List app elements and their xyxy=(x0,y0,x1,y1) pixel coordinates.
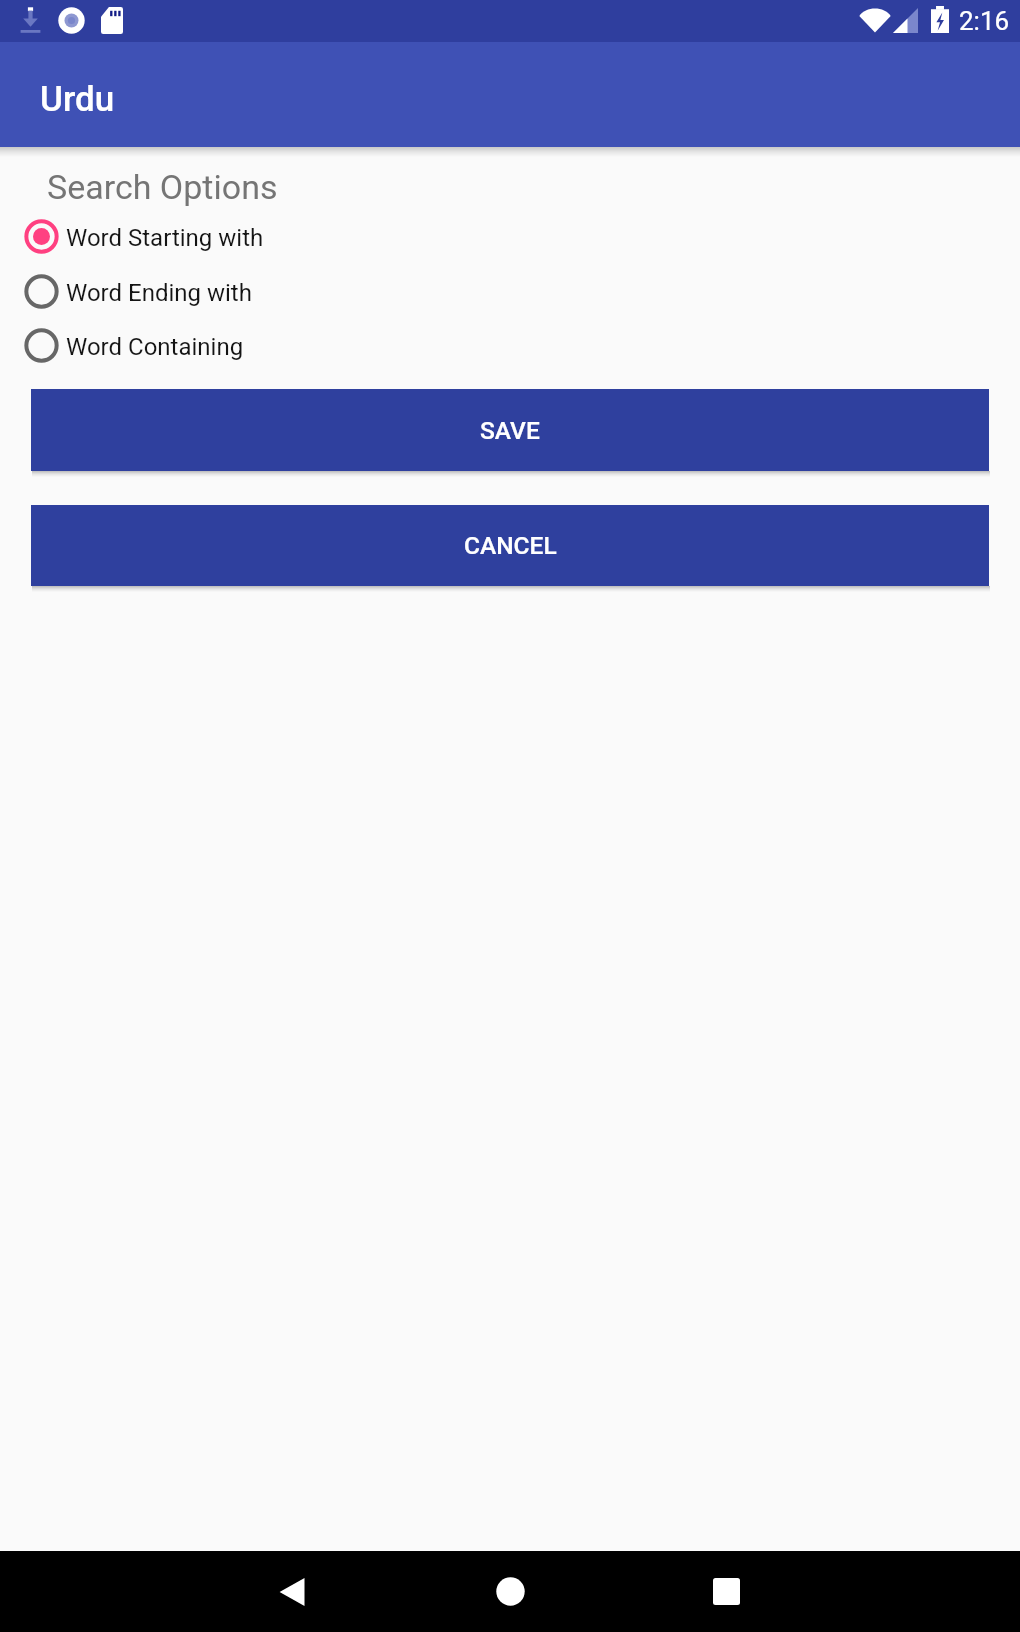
staticText: Word Starting with xyxy=(66,224,264,252)
button[interactable]: Recent apps xyxy=(682,1551,770,1632)
button[interactable]: Word Containing xyxy=(0,323,1020,367)
staticText: CANCEL xyxy=(464,531,557,560)
staticText: Search Options xyxy=(47,167,278,207)
button[interactable]: SAVE xyxy=(31,389,989,471)
button[interactable]: Word Starting with xyxy=(0,214,1020,258)
staticText: Word Containing xyxy=(66,333,244,361)
staticText: Word Ending with xyxy=(66,279,252,307)
staticText: SAVE xyxy=(480,416,540,445)
button[interactable]: Back xyxy=(250,1551,338,1632)
button[interactable]: CANCEL xyxy=(31,505,989,586)
button[interactable]: Home xyxy=(466,1551,554,1632)
button[interactable]: Word Ending with xyxy=(0,269,1020,313)
staticText: Urdu xyxy=(40,79,115,120)
staticText: 2:16 xyxy=(959,6,1010,36)
